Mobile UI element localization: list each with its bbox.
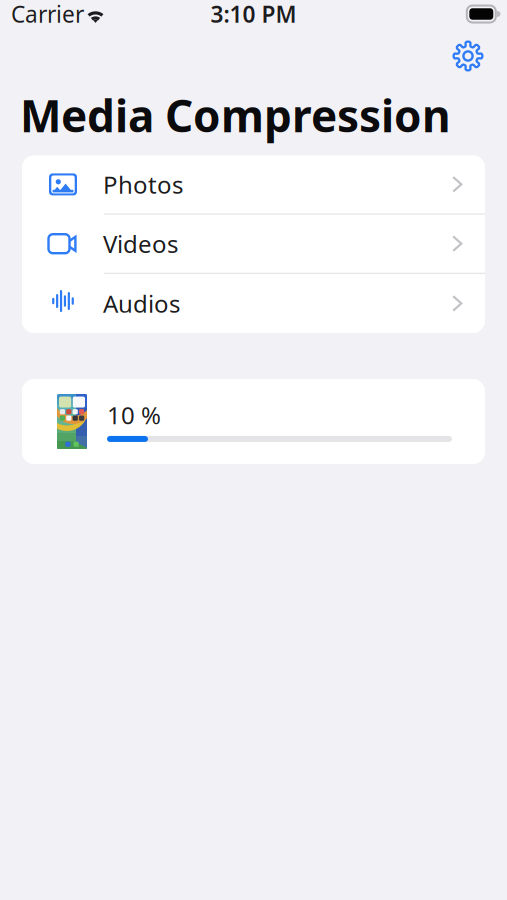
staticText: Carrier <box>11 0 84 29</box>
staticText: Videos <box>103 228 178 260</box>
button[interactable]: Settings <box>446 34 490 78</box>
staticText: Media Compression <box>20 86 451 144</box>
staticText: 3:10 PM <box>210 0 296 29</box>
staticText: Photos <box>103 168 183 200</box>
button[interactable]: Videos <box>22 215 485 274</box>
button[interactable]: Audios <box>22 274 485 333</box>
staticText: 10 % <box>107 399 161 431</box>
button[interactable]: Photos <box>22 155 485 215</box>
staticText: Audios <box>103 288 180 319</box>
